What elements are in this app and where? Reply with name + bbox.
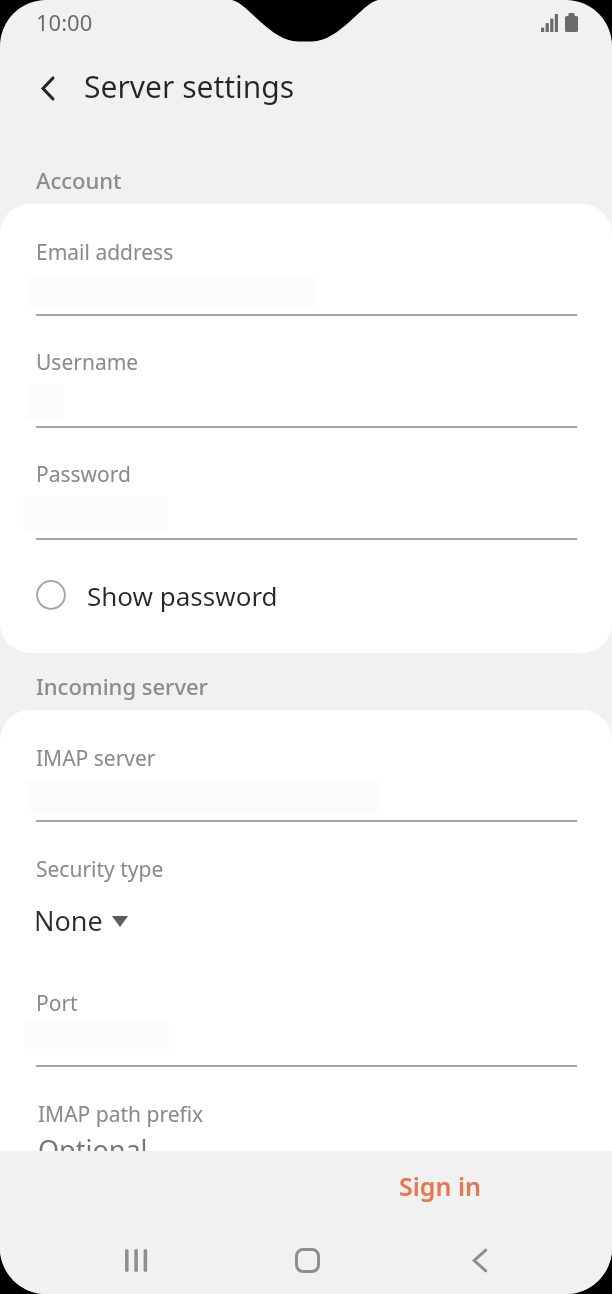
button[interactable] [0,454,612,540]
button[interactable] [0,983,612,1067]
staticText: Port [36,989,78,1018]
staticText: Username [36,348,139,377]
button[interactable]: Show password [0,557,612,633]
staticText: Account [36,165,122,195]
staticText: IMAP path prefix [38,1100,204,1129]
staticText: IMAP server [36,744,156,773]
staticText: Security type [36,855,164,884]
button[interactable]: Back [434,1223,526,1294]
button[interactable]: Recent apps [90,1223,182,1294]
staticText: None [34,902,103,939]
staticText: Show password [87,578,278,613]
button[interactable]: Security type [0,855,612,947]
staticText: Optional [38,1131,148,1168]
staticText: Sign in [399,1169,481,1203]
button[interactable] [0,342,612,428]
staticText: 10:00 [36,7,93,37]
button[interactable] [0,232,612,316]
staticText: Password [36,460,131,489]
staticText: Email address [36,238,174,267]
staticText: Incoming server [36,671,208,701]
button[interactable]: Home [261,1223,353,1294]
button[interactable]: Sign in [381,1159,499,1213]
button[interactable] [0,738,612,822]
staticText: Server settings [84,66,295,107]
button[interactable]: Back [24,64,72,112]
